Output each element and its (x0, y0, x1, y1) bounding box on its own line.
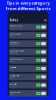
staticText: MLB (10, 60, 13, 62)
staticText: 2.04 (37, 84, 40, 86)
staticText: Premier League (10, 27, 22, 29)
button[interactable]: Chiefs - Bills (9, 65, 47, 72)
staticText: Bayern - Dortmund (10, 50, 24, 52)
staticText: 1.66 (37, 76, 40, 78)
staticText: Yankees - Red Sox (10, 58, 23, 60)
staticText: Bundesliga (10, 52, 18, 54)
staticText: 1.78 (37, 93, 40, 94)
button[interactable]: Bayern - Dortmund (9, 48, 47, 55)
staticText: Today (9, 18, 18, 22)
staticText: Serie A (10, 85, 15, 87)
staticText: NBA (10, 35, 13, 37)
staticText: PSG - Marseille (10, 75, 19, 77)
button[interactable]: Lakers - Celtics (9, 32, 47, 39)
button[interactable]: Yankees - Red Sox (9, 57, 47, 64)
staticText: Lakers - Celtics (10, 33, 21, 35)
staticText: 2.35 (37, 59, 40, 61)
staticText: Nadal - Alcaraz (10, 42, 20, 44)
button[interactable]: Nadal - Alcaraz (9, 40, 47, 47)
staticText: from different Sports (5, 6, 50, 11)
staticText: Man City - Arsenal (10, 25, 22, 27)
staticText: 2.10 (37, 34, 40, 36)
button[interactable]: Man City - Arsenal (9, 24, 47, 30)
staticText: Warriors - Heat (10, 92, 21, 93)
button[interactable]: PSG - Marseille (9, 73, 47, 80)
staticText: Chiefs - Bills (10, 67, 16, 68)
staticText: 1.72 (37, 51, 40, 53)
staticText: 1.85 (37, 26, 40, 28)
staticText: ATP Masters (10, 44, 19, 45)
button[interactable]: Warriors - Heat (9, 90, 47, 97)
button[interactable]: Inter - Milan (9, 82, 47, 88)
staticText: Tips in every category (6, 0, 49, 6)
staticText: Ligue 1 (10, 77, 15, 79)
staticText: 1.90 (37, 68, 40, 69)
staticText: Inter - Milan (10, 83, 17, 85)
staticText: NBA (10, 93, 13, 95)
staticText: 1.54 (37, 43, 40, 45)
staticText: NFL (10, 69, 13, 70)
